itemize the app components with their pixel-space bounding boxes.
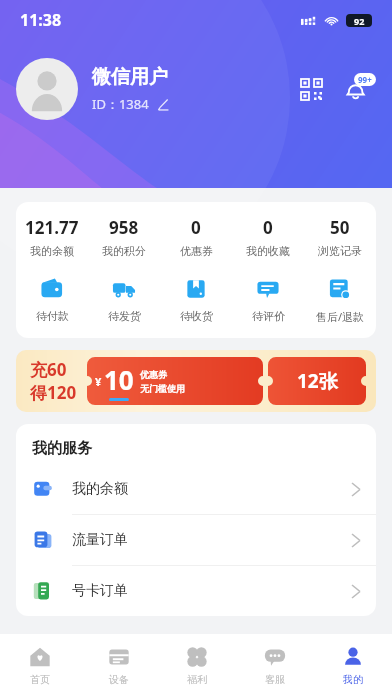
staticText: 客服 — [265, 673, 285, 686]
button[interactable]: 号卡订单 — [16, 566, 376, 616]
button[interactable]: 我的余额 — [16, 464, 376, 515]
staticText: 首页 — [30, 673, 50, 686]
staticText: 11:38 — [20, 9, 62, 31]
staticText: 优惠券 — [180, 244, 213, 258]
button[interactable]: 售后/退款 — [304, 276, 376, 324]
button[interactable]: 客服 — [236, 634, 314, 696]
staticText: 无门槛使用 — [140, 383, 185, 394]
staticText: 售后/退款 — [316, 309, 365, 324]
staticText: 充60 — [30, 358, 67, 381]
staticText: 我的余额 — [72, 480, 352, 498]
staticText: 号卡订单 — [72, 582, 352, 600]
staticText: 50 — [330, 216, 350, 239]
staticText: 待付款 — [36, 309, 69, 323]
staticText: 12张 — [297, 368, 338, 394]
button[interactable]: 待发货 — [88, 276, 160, 323]
staticText: 0 — [191, 216, 201, 239]
staticText: 得120 — [30, 381, 77, 404]
staticText: 我的收藏 — [246, 244, 290, 258]
staticText: 流量订单 — [72, 531, 352, 549]
staticText: 0 — [263, 216, 273, 239]
staticText: 我的积分 — [102, 244, 146, 258]
staticText: 10 — [104, 362, 134, 397]
button[interactable]: 设备 — [79, 634, 158, 696]
staticText: 92 — [354, 15, 365, 27]
button[interactable]: 958 — [88, 216, 160, 258]
button[interactable]: 充60 — [16, 350, 376, 412]
button[interactable]: 0 — [160, 216, 232, 258]
button[interactable]: Edit ID — [157, 98, 170, 111]
button[interactable]: Scan QR code — [294, 72, 328, 106]
button[interactable]: 121.77 — [16, 216, 88, 258]
button[interactable]: 我的 — [314, 634, 392, 696]
staticText: 121.77 — [25, 216, 79, 239]
staticText: 优惠券 — [140, 369, 167, 380]
staticText: ID：1384 — [92, 95, 149, 113]
staticText: 微信用户 — [92, 65, 168, 89]
button[interactable]: 待评价 — [232, 276, 304, 323]
button[interactable]: 流量订单 — [16, 515, 376, 566]
button[interactable]: 首页 — [0, 634, 79, 696]
staticText: 958 — [109, 216, 139, 239]
staticText: 待评价 — [252, 309, 285, 323]
staticText: ¥ — [95, 374, 102, 389]
button[interactable]: 50 — [304, 216, 376, 258]
staticText: 我的服务 — [32, 439, 92, 458]
button[interactable]: 待收货 — [160, 276, 232, 323]
button[interactable]: 待付款 — [16, 276, 88, 323]
button[interactable] — [16, 58, 78, 120]
staticText: 待发货 — [108, 309, 141, 323]
staticText: 我的 — [343, 673, 363, 686]
staticText: 99+ — [358, 74, 372, 85]
staticText: 设备 — [109, 673, 129, 686]
button[interactable]: Notifications, 99+ unread — [340, 70, 378, 108]
button[interactable]: 福利 — [158, 634, 236, 696]
staticText: 我的余额 — [30, 244, 74, 258]
staticText: 待收货 — [180, 309, 213, 323]
button[interactable]: 0 — [232, 216, 304, 258]
staticText: 福利 — [187, 673, 207, 686]
staticText: 浏览记录 — [318, 244, 362, 258]
